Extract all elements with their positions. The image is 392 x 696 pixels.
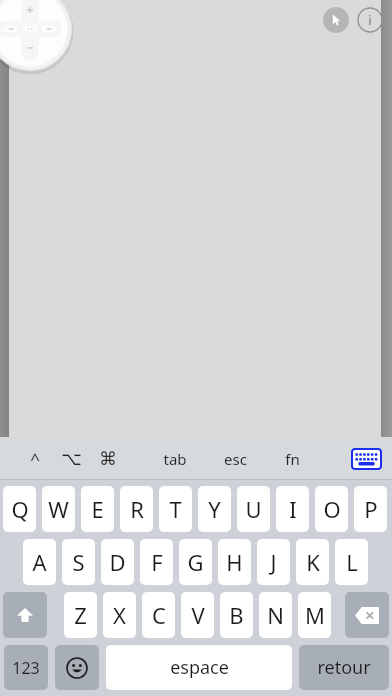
button[interactable]: Pointer mode bbox=[323, 7, 349, 33]
staticText: I bbox=[289, 494, 297, 524]
staticText: Z bbox=[74, 600, 87, 630]
button[interactable]: espace bbox=[106, 645, 292, 690]
button[interactable]: esc bbox=[214, 437, 256, 480]
staticText: Y bbox=[208, 494, 221, 524]
staticText: B bbox=[229, 600, 244, 630]
button[interactable]: Information bbox=[357, 7, 383, 33]
button[interactable]: T bbox=[159, 486, 192, 532]
staticText: W bbox=[48, 494, 69, 524]
button[interactable]: U bbox=[237, 486, 270, 532]
staticText: J bbox=[270, 547, 277, 577]
staticText: P bbox=[364, 494, 378, 524]
button[interactable]: Emoji bbox=[55, 645, 99, 690]
staticText: O bbox=[323, 494, 341, 524]
button[interactable]: W bbox=[42, 486, 75, 532]
staticText: G bbox=[187, 547, 204, 577]
button[interactable]: N bbox=[259, 592, 292, 638]
button[interactable]: K bbox=[296, 539, 329, 585]
staticText: E bbox=[91, 494, 104, 524]
staticText: K bbox=[306, 547, 320, 577]
button[interactable]: R bbox=[120, 486, 153, 532]
button[interactable]: O bbox=[315, 486, 348, 532]
staticText: i bbox=[368, 11, 372, 29]
button[interactable]: Q bbox=[3, 486, 36, 532]
staticText: H bbox=[226, 547, 243, 577]
button[interactable]: M bbox=[298, 592, 331, 638]
button[interactable]: Z bbox=[64, 592, 97, 638]
button[interactable]: F bbox=[140, 539, 173, 585]
staticText: esc bbox=[224, 449, 247, 469]
button[interactable]: D bbox=[101, 539, 134, 585]
button[interactable]: A bbox=[23, 539, 56, 585]
button[interactable]: Shift bbox=[3, 592, 47, 638]
staticText: M bbox=[305, 600, 325, 630]
staticText: ⌥ bbox=[61, 448, 82, 469]
button[interactable]: X bbox=[103, 592, 136, 638]
staticText: L bbox=[346, 547, 358, 577]
staticText: Q bbox=[11, 494, 29, 524]
button[interactable]: Backspace bbox=[345, 592, 389, 638]
button[interactable]: V bbox=[181, 592, 214, 638]
button[interactable]: fn bbox=[271, 437, 313, 480]
button[interactable]: Remote control pad bbox=[0, 0, 74, 73]
staticText: V bbox=[191, 600, 205, 630]
button[interactable]: ⌘ bbox=[87, 437, 129, 480]
button[interactable]: E bbox=[81, 486, 114, 532]
button[interactable]: tab bbox=[154, 437, 196, 480]
staticText: U bbox=[245, 494, 262, 524]
staticText: espace bbox=[170, 655, 229, 680]
staticText: C bbox=[152, 600, 166, 630]
staticText: D bbox=[109, 547, 126, 577]
button[interactable]: I bbox=[276, 486, 309, 532]
staticText: ^ bbox=[30, 447, 40, 470]
staticText: N bbox=[267, 600, 284, 630]
staticText: S bbox=[72, 547, 85, 577]
button[interactable]: P bbox=[354, 486, 387, 532]
button[interactable]: Y bbox=[198, 486, 231, 532]
staticText: F bbox=[151, 547, 163, 577]
button[interactable]: B bbox=[220, 592, 253, 638]
staticText: retour bbox=[317, 655, 371, 680]
button[interactable]: S bbox=[62, 539, 95, 585]
staticText: A bbox=[32, 547, 47, 577]
button[interactable]: J bbox=[257, 539, 290, 585]
button[interactable]: L bbox=[335, 539, 368, 585]
staticText: 123 bbox=[12, 657, 40, 679]
staticText: R bbox=[130, 494, 144, 524]
button[interactable]: H bbox=[218, 539, 251, 585]
staticText: ⌘ bbox=[99, 448, 117, 469]
staticText: T bbox=[169, 494, 182, 524]
button[interactable]: ⌥ bbox=[50, 437, 92, 480]
button[interactable]: ^ bbox=[14, 437, 56, 480]
staticText: X bbox=[113, 600, 126, 630]
button[interactable]: C bbox=[142, 592, 175, 638]
button[interactable]: 123 bbox=[4, 645, 48, 690]
button[interactable]: Hide keyboard bbox=[351, 448, 382, 470]
button[interactable]: retour bbox=[299, 645, 389, 690]
button[interactable]: G bbox=[179, 539, 212, 585]
staticText: tab bbox=[163, 449, 187, 469]
staticText: fn bbox=[285, 449, 300, 469]
